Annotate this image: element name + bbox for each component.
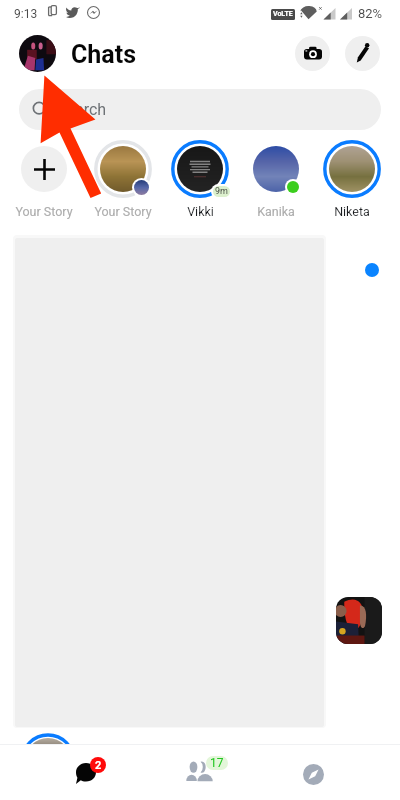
button[interactable]: Chats xyxy=(29,746,142,800)
button[interactable]: People xyxy=(143,746,257,800)
staticText: Search xyxy=(57,100,107,119)
button[interactable]: Niketa xyxy=(314,140,390,222)
staticText: Vikki xyxy=(187,204,214,219)
staticText: Niketa xyxy=(334,204,370,219)
button[interactable]: Discover xyxy=(257,746,371,800)
staticText: Your Story xyxy=(94,204,152,219)
staticText: 82% xyxy=(358,6,383,21)
staticText: VoLTE xyxy=(273,10,293,18)
staticText: 9m xyxy=(215,186,228,197)
button[interactable]: Your Story xyxy=(6,140,82,222)
button[interactable]: Photo xyxy=(336,597,382,644)
staticText: 2 xyxy=(95,759,102,772)
button[interactable]: Search xyxy=(19,89,381,130)
button[interactable]: 9m xyxy=(162,140,238,222)
button[interactable]: Profile xyxy=(19,35,56,72)
staticText: Your Story xyxy=(15,204,73,219)
staticText: Kanika xyxy=(257,204,295,219)
staticText: 9:13 xyxy=(14,7,38,21)
button[interactable]: Your Story xyxy=(85,140,161,222)
button[interactable]: Camera xyxy=(295,36,330,71)
button[interactable]: Kanika xyxy=(238,140,314,222)
button[interactable]: New message xyxy=(345,36,380,71)
button[interactable]: Story xyxy=(20,733,76,789)
staticText: Chats xyxy=(71,40,137,69)
staticText: 17 xyxy=(210,756,224,770)
